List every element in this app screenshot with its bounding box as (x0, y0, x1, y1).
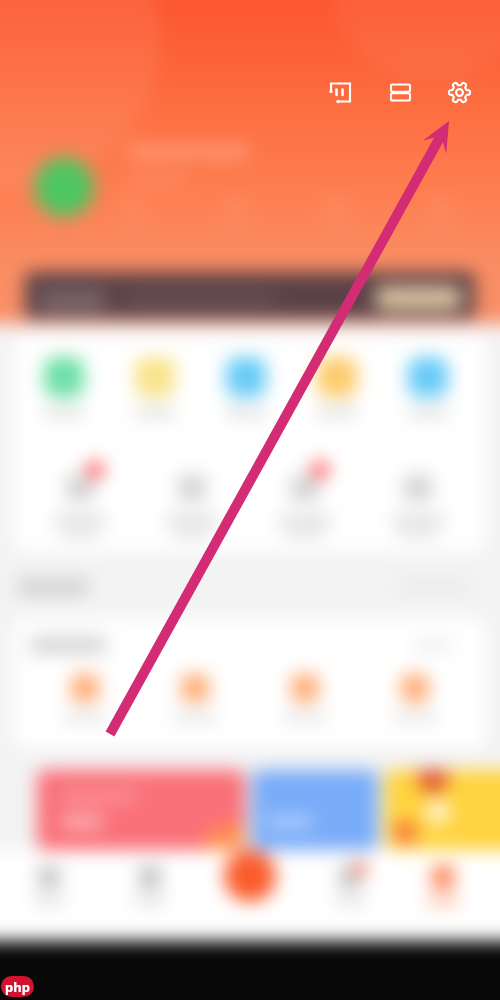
button[interactable] (252, 770, 378, 850)
button[interactable] (317, 357, 357, 447)
button[interactable] (384, 463, 452, 541)
button[interactable] (383, 674, 447, 730)
button[interactable] (21, 866, 77, 916)
button[interactable] (25, 272, 475, 319)
button[interactable] (44, 357, 84, 447)
button[interactable] (273, 674, 337, 730)
button[interactable]: Profile avatar (34, 157, 94, 217)
button[interactable] (53, 674, 117, 730)
button[interactable] (322, 866, 378, 916)
button[interactable] (415, 866, 471, 916)
button[interactable]: Pay (224, 850, 276, 902)
button[interactable] (122, 866, 178, 916)
button[interactable] (271, 463, 339, 541)
button[interactable] (163, 674, 227, 730)
staticText: php (5, 978, 30, 996)
button[interactable] (46, 463, 114, 541)
button[interactable] (385, 770, 500, 850)
button[interactable]: Settings (438, 71, 480, 113)
button[interactable] (135, 357, 175, 447)
button[interactable] (158, 463, 226, 541)
button[interactable] (37, 770, 245, 850)
button[interactable]: Scan (319, 71, 361, 113)
button[interactable] (226, 357, 266, 447)
button[interactable] (408, 357, 448, 447)
button[interactable]: Cards (379, 71, 421, 113)
